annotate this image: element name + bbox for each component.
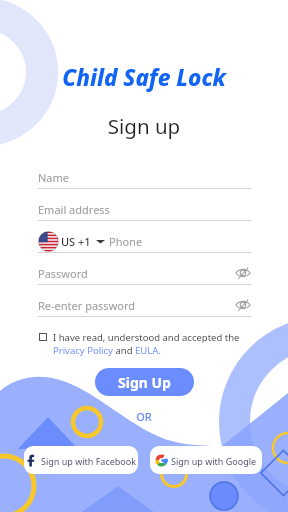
staticText: I have read, understood and accepted the (53, 331, 240, 344)
staticText: Re-enter password (38, 298, 136, 313)
button[interactable]: Sign up with Facebook (24, 446, 138, 474)
staticText: Sign up with Facebook (41, 455, 137, 467)
staticText: Sign up with Google (171, 455, 257, 467)
staticText: Child Safe Lock (0, 62, 288, 93)
button[interactable]: Sign up with Google (150, 446, 262, 474)
staticText: Privacy Policy and EULA. (53, 344, 161, 357)
staticText: Phone (109, 234, 143, 249)
staticText: US +1 (61, 234, 91, 249)
staticText: Sign up (0, 112, 288, 140)
button[interactable]: I have read, understood and accepted the (38, 331, 251, 357)
button[interactable]: Show password (235, 297, 251, 313)
staticText: Sign Up (118, 373, 171, 392)
button[interactable]: Sign Up (95, 368, 194, 396)
staticText: Email address (38, 202, 110, 217)
staticText: Password (38, 266, 88, 281)
button[interactable]: Show password (235, 265, 251, 281)
staticText: OR (0, 409, 288, 424)
button[interactable]: US +1 (38, 231, 105, 252)
staticText: Name (38, 170, 70, 185)
